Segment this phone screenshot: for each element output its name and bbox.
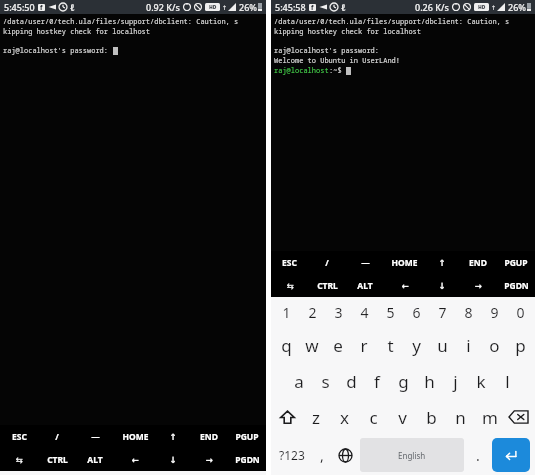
- button[interactable]: CTRL: [308, 275, 346, 297]
- button[interactable]: →: [459, 275, 497, 297]
- button[interactable]: PGUP: [228, 425, 266, 449]
- button[interactable]: 0: [507, 297, 533, 327]
- button[interactable]: k: [468, 363, 494, 399]
- staticText: ALT: [87, 454, 103, 466]
- staticText: ↑: [438, 258, 446, 268]
- staticText: :~$: [329, 66, 346, 76]
- button[interactable]: ↓: [156, 449, 190, 471]
- button[interactable]: ↓: [425, 275, 459, 297]
- button[interactable]: o: [481, 327, 507, 363]
- staticText: 4: [360, 303, 369, 322]
- button[interactable]: Change keyboard language: [332, 438, 358, 472]
- button[interactable]: j: [442, 363, 468, 399]
- staticText: HD: [478, 4, 486, 11]
- staticText: ?123: [279, 447, 305, 463]
- button[interactable]: n: [446, 399, 475, 435]
- staticText: Welcome to Ubuntu in UserLAnd!: [274, 56, 400, 66]
- button[interactable]: v: [388, 399, 417, 435]
- button[interactable]: ←: [384, 275, 425, 297]
- button[interactable]: ⇆: [271, 275, 308, 297]
- button[interactable]: q: [273, 327, 299, 363]
- button[interactable]: —: [76, 425, 114, 449]
- staticText: CTRL: [47, 454, 68, 466]
- staticText: ←: [131, 455, 139, 465]
- button[interactable]: t: [377, 327, 403, 363]
- button[interactable]: ↑: [156, 425, 190, 449]
- button[interactable]: r: [351, 327, 377, 363]
- button[interactable]: 5: [377, 297, 403, 327]
- button[interactable]: ↑: [425, 251, 459, 275]
- button[interactable]: ESC: [0, 425, 38, 449]
- button[interactable]: 6: [403, 297, 429, 327]
- staticText: PGDN: [235, 454, 260, 466]
- button[interactable]: CTRL: [38, 449, 76, 471]
- button[interactable]: f: [364, 363, 390, 399]
- button[interactable]: ?123: [273, 438, 311, 472]
- button[interactable]: END: [459, 251, 497, 275]
- button[interactable]: .: [466, 438, 489, 472]
- staticText: END: [469, 257, 487, 269]
- button[interactable]: /: [38, 425, 76, 449]
- button[interactable]: END: [190, 425, 228, 449]
- button[interactable]: l: [494, 363, 520, 399]
- button[interactable]: z: [301, 399, 330, 435]
- button[interactable]: —: [346, 251, 384, 275]
- staticText: 0.92 K/s: [146, 1, 180, 13]
- button[interactable]: 8: [455, 297, 481, 327]
- button[interactable]: w: [299, 327, 325, 363]
- staticText: ALT: [357, 280, 373, 292]
- staticText: s: [321, 370, 330, 393]
- staticText: English: [398, 450, 426, 461]
- staticText: PGUP: [504, 257, 528, 269]
- button[interactable]: ←: [114, 449, 156, 471]
- button[interactable]: Enter: [492, 438, 530, 472]
- staticText: /: [55, 431, 59, 443]
- button[interactable]: d: [338, 363, 364, 399]
- button[interactable]: 3: [325, 297, 351, 327]
- button[interactable]: e: [325, 327, 351, 363]
- button[interactable]: ALT: [346, 275, 384, 297]
- staticText: 5: [386, 303, 395, 322]
- staticText: raj@localhost's password:: [274, 46, 379, 56]
- button[interactable]: HOME: [384, 251, 425, 275]
- button[interactable]: m: [475, 399, 504, 435]
- button[interactable]: 1: [273, 297, 299, 327]
- button[interactable]: PGDN: [228, 449, 266, 471]
- staticText: 9: [490, 303, 499, 322]
- button[interactable]: a: [286, 363, 312, 399]
- button[interactable]: ,: [311, 438, 332, 472]
- button[interactable]: p: [507, 327, 533, 363]
- button[interactable]: PGUP: [497, 251, 535, 275]
- button[interactable]: ESC: [271, 251, 308, 275]
- button[interactable]: /: [308, 251, 346, 275]
- staticText: g: [398, 370, 409, 393]
- staticText: ↑: [491, 4, 497, 11]
- button[interactable]: y: [403, 327, 429, 363]
- button[interactable]: s: [312, 363, 338, 399]
- button[interactable]: b: [417, 399, 446, 435]
- button[interactable]: g: [390, 363, 416, 399]
- button[interactable]: 4: [351, 297, 377, 327]
- staticText: ↑: [222, 4, 228, 11]
- button[interactable]: u: [429, 327, 455, 363]
- staticText: u: [437, 334, 448, 357]
- staticText: →: [474, 281, 482, 291]
- button[interactable]: 9: [481, 297, 507, 327]
- button[interactable]: ⇆: [0, 449, 38, 471]
- button[interactable]: c: [359, 399, 388, 435]
- button[interactable]: 2: [299, 297, 325, 327]
- button[interactable]: ALT: [76, 449, 114, 471]
- button[interactable]: Shift: [273, 399, 301, 435]
- staticText: ↑: [169, 432, 177, 442]
- staticText: f: [40, 4, 43, 11]
- button[interactable]: h: [416, 363, 442, 399]
- button[interactable]: 7: [429, 297, 455, 327]
- button[interactable]: Backspace: [504, 399, 533, 435]
- button[interactable]: i: [455, 327, 481, 363]
- button[interactable]: PGDN: [497, 275, 535, 297]
- button[interactable]: x: [330, 399, 359, 435]
- staticText: 8: [464, 303, 473, 322]
- button[interactable]: →: [190, 449, 228, 471]
- button[interactable]: English: [360, 438, 464, 472]
- button[interactable]: HOME: [114, 425, 156, 449]
